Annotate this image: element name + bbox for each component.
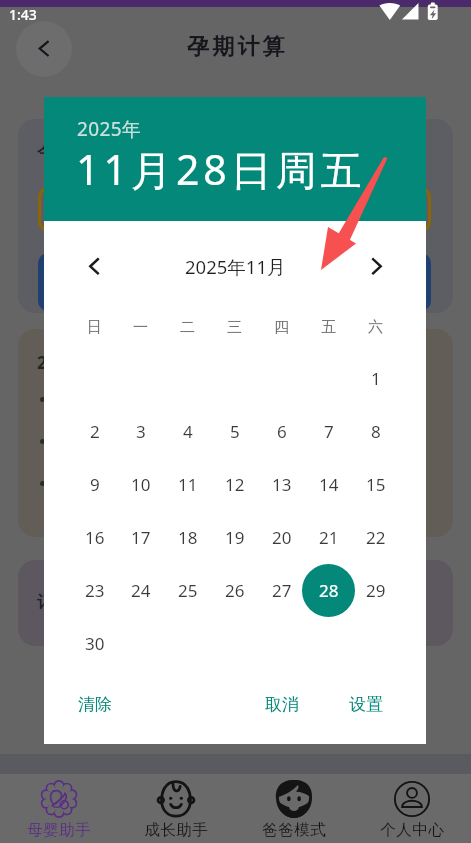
- staticText: 一: [133, 318, 148, 337]
- button[interactable]: 27: [255, 564, 308, 617]
- button[interactable]: 成长助手: [117, 774, 235, 843]
- button[interactable]: 13: [255, 458, 308, 511]
- staticText: 23: [85, 579, 105, 602]
- staticText: 17: [131, 526, 151, 549]
- button[interactable]: 26: [208, 564, 261, 617]
- staticText: 13: [272, 473, 292, 496]
- staticText: 成长助手: [144, 820, 208, 840]
- staticText: 26: [225, 579, 245, 602]
- button[interactable]: 11: [161, 458, 214, 511]
- button[interactable]: 18: [161, 511, 214, 564]
- staticText: 8: [371, 420, 381, 443]
- staticText: 2025年11月: [185, 254, 286, 279]
- staticText: 25: [178, 579, 198, 602]
- button[interactable]: 1: [349, 352, 402, 405]
- button[interactable]: 22: [349, 511, 402, 564]
- button[interactable]: 3: [114, 405, 167, 458]
- staticText: 20: [272, 526, 292, 549]
- button[interactable]: 17: [114, 511, 167, 564]
- staticText: 个人中心: [380, 820, 444, 840]
- staticText: 7: [324, 420, 334, 443]
- staticText: 9: [90, 473, 100, 496]
- staticText: 24: [131, 579, 151, 602]
- staticText: 19: [225, 526, 245, 549]
- button[interactable]: 8: [349, 405, 402, 458]
- staticText: 27: [272, 579, 292, 602]
- button[interactable]: Next month: [357, 246, 397, 286]
- staticText: 3: [136, 420, 146, 443]
- button[interactable]: 7: [302, 405, 355, 458]
- staticText: 28: [319, 579, 339, 602]
- staticText: 六: [368, 318, 383, 337]
- staticText: 11月28日周五: [76, 141, 366, 197]
- staticText: 1: [371, 367, 381, 390]
- button[interactable]: 母婴助手: [0, 774, 117, 843]
- staticText: 12: [225, 473, 245, 496]
- staticText: 爸爸模式: [262, 820, 326, 840]
- staticText: 四: [274, 318, 289, 337]
- button[interactable]: 10: [114, 458, 167, 511]
- staticText: 2025年: [77, 116, 142, 142]
- staticText: 2025: [37, 351, 76, 374]
- staticText: 取消: [265, 694, 299, 715]
- button[interactable]: 4: [161, 405, 214, 458]
- staticText: 15: [366, 473, 386, 496]
- staticText: 五: [321, 318, 336, 337]
- staticText: 三: [227, 318, 242, 337]
- staticText: 21: [319, 526, 339, 549]
- button[interactable]: 21: [302, 511, 355, 564]
- staticText: 记录: [37, 592, 71, 613]
- staticText: 母婴助手: [27, 820, 91, 840]
- staticText: 1:43: [9, 5, 37, 24]
- staticText: 今天: [37, 141, 71, 162]
- button[interactable]: 24: [114, 564, 167, 617]
- button[interactable]: 2: [68, 405, 121, 458]
- staticText: 30: [85, 632, 105, 655]
- button[interactable]: 14: [302, 458, 355, 511]
- button[interactable]: 15: [349, 458, 402, 511]
- staticText: 10: [131, 473, 151, 496]
- button[interactable]: 5: [208, 405, 261, 458]
- button[interactable]: Back: [16, 21, 72, 77]
- staticText: 5: [230, 420, 240, 443]
- staticText: 孕期计算: [187, 33, 288, 61]
- staticText: 4: [183, 420, 193, 443]
- staticText: 二: [180, 318, 195, 337]
- button[interactable]: 20: [255, 511, 308, 564]
- button[interactable]: 设置: [339, 686, 393, 723]
- staticText: 设置: [349, 694, 383, 715]
- button[interactable]: 16: [68, 511, 121, 564]
- button[interactable]: 清除: [68, 686, 122, 723]
- staticText: 清除: [78, 694, 112, 715]
- button[interactable]: 23: [68, 564, 121, 617]
- button[interactable]: 12: [208, 458, 261, 511]
- staticText: 6: [277, 420, 287, 443]
- button[interactable]: 25: [161, 564, 214, 617]
- button[interactable]: 个人中心: [353, 774, 471, 843]
- button[interactable]: 30: [68, 617, 121, 670]
- staticText: 22: [366, 526, 386, 549]
- button[interactable]: 9: [68, 458, 121, 511]
- staticText: 11: [178, 473, 198, 496]
- staticText: 18: [178, 526, 198, 549]
- button[interactable]: 28: [302, 564, 355, 617]
- staticText: 16: [85, 526, 105, 549]
- button[interactable]: 19: [208, 511, 261, 564]
- staticText: 日: [87, 318, 102, 337]
- button[interactable]: 6: [255, 405, 308, 458]
- button[interactable]: 爸爸模式: [235, 774, 353, 843]
- button[interactable]: 取消: [255, 686, 309, 723]
- button[interactable]: Previous month: [74, 246, 114, 286]
- staticText: 14: [319, 473, 339, 496]
- button[interactable]: 29: [349, 564, 402, 617]
- staticText: 2: [90, 420, 100, 443]
- staticText: 29: [366, 579, 386, 602]
